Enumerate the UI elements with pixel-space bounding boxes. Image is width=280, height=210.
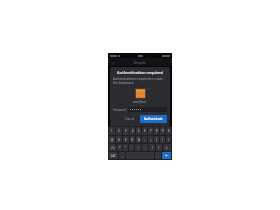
staticText: Authentication is required to create thi… — [113, 77, 167, 85]
button[interactable]: 3 — [123, 127, 129, 135]
button[interactable]: # — [116, 136, 122, 143]
staticText: 0 — [168, 129, 170, 133]
button[interactable]: $ — [123, 136, 129, 143]
staticText: - — [144, 138, 145, 142]
staticText: Details — [134, 60, 146, 65]
button[interactable]: 5 — [136, 127, 141, 135]
button[interactable]: * — [117, 144, 122, 151]
staticText: 6 — [144, 129, 146, 133]
button[interactable]: Cancel — [122, 115, 138, 123]
staticText: * — [119, 146, 121, 150]
staticText: ; — [145, 146, 146, 150]
button[interactable] — [111, 85, 169, 90]
button[interactable]: 1 — [109, 127, 115, 135]
button[interactable]: & — [136, 136, 141, 143]
button[interactable]: Back — [111, 61, 115, 65]
button[interactable]: ' — [129, 144, 134, 151]
button[interactable]: ABC — [109, 152, 118, 159]
staticText: 9 — [162, 129, 164, 133]
button[interactable]: Enter — [162, 152, 171, 159]
button[interactable]: ( — [154, 136, 159, 143]
button[interactable]: @ — [109, 136, 115, 143]
staticText: =\< — [111, 146, 115, 150]
staticText: 1 — [111, 129, 113, 133]
staticText: ) — [162, 138, 163, 142]
button[interactable] — [111, 75, 169, 80]
button[interactable]: Backspace — [163, 144, 171, 151]
button[interactable]: Authenticate — [140, 115, 167, 123]
staticText: % — [131, 138, 134, 142]
button[interactable]: 9 — [160, 127, 165, 135]
staticText: : — [138, 146, 139, 150]
staticText: ABC — [111, 154, 116, 158]
staticText: Password — [113, 108, 126, 112]
staticText: ? — [158, 146, 160, 150]
button[interactable]: 4 — [130, 127, 135, 135]
button[interactable] — [111, 80, 169, 85]
button[interactable]: Period — [155, 152, 161, 159]
button[interactable]: + — [148, 136, 153, 143]
staticText: 2 — [118, 129, 120, 133]
button[interactable] — [111, 70, 169, 75]
button[interactable]: / — [166, 136, 171, 143]
button[interactable]: - — [142, 136, 147, 143]
staticText: x — [166, 146, 168, 150]
staticText: . — [158, 154, 159, 158]
staticText: @ — [111, 138, 114, 142]
button[interactable]: 6 — [142, 127, 147, 135]
staticText: , — [122, 154, 123, 158]
staticText: " — [125, 146, 127, 150]
button[interactable]: 2 — [116, 127, 122, 135]
button[interactable]: 8 — [154, 127, 159, 135]
staticText: Authenticate — [144, 117, 163, 121]
staticText: 5 — [138, 129, 140, 133]
button[interactable]: % — [130, 136, 135, 143]
button[interactable]: ? — [156, 144, 162, 151]
staticText: + — [150, 138, 152, 142]
button[interactable]: 0 — [166, 127, 171, 135]
staticText: user@host — [133, 100, 147, 104]
button[interactable]: Back — [108, 58, 172, 66]
staticText: 7 — [150, 129, 152, 133]
button[interactable]: ! — [149, 144, 155, 151]
button[interactable]: Comma — [119, 152, 125, 159]
button[interactable]: 7 — [148, 127, 153, 135]
staticText: & — [138, 138, 140, 142]
button[interactable]: ; — [142, 144, 148, 151]
button[interactable]: " — [123, 144, 128, 151]
staticText: ( — [156, 138, 157, 142]
button[interactable]: ) — [160, 136, 165, 143]
staticText: ' — [131, 146, 132, 150]
staticText: ! — [152, 146, 153, 150]
button[interactable]: : — [135, 144, 141, 151]
staticText: 3 — [125, 129, 127, 133]
staticText: # — [118, 138, 120, 142]
staticText: Authentication required — [113, 70, 167, 75]
button[interactable] — [128, 107, 167, 112]
staticText: Cancel — [125, 117, 135, 121]
staticText: 4 — [132, 129, 134, 133]
staticText: / — [168, 138, 169, 142]
button[interactable]: =\< — [109, 144, 116, 151]
staticText: $ — [125, 138, 127, 142]
staticText: 8 — [156, 129, 158, 133]
